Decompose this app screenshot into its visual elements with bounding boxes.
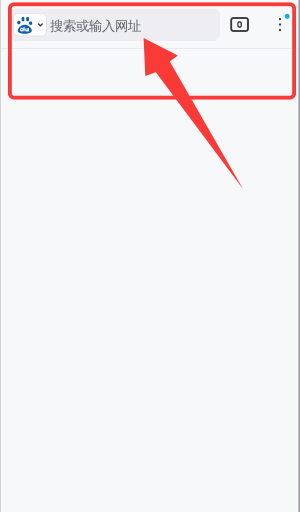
button[interactable]: Tabs [224,8,256,40]
button[interactable]: More options [266,13,294,41]
staticText: 搜索或输入网址 [50,18,141,34]
button[interactable]: 搜索或输入网址 [10,9,220,41]
